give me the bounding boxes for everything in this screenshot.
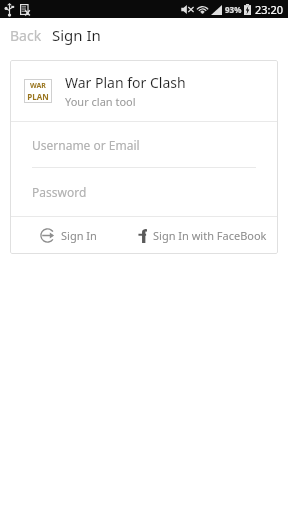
button[interactable]: WAR (10, 60, 278, 121)
button[interactable]: Password (10, 168, 278, 216)
staticText: Sign In (52, 25, 101, 45)
staticText: 93% (225, 4, 242, 15)
button[interactable]: Sign In with FaceBook (127, 217, 278, 254)
other: Sign In with FaceBook (138, 229, 147, 243)
staticText: War Plan for Clash (65, 73, 186, 92)
staticText: Username or Email (32, 137, 140, 153)
staticText: WAR (30, 81, 46, 91)
staticText: PLAN (27, 91, 49, 102)
staticText: Sign In with FaceBook (153, 228, 267, 243)
button[interactable]: Back (0, 19, 50, 52)
staticText: Your clan tool (65, 94, 136, 109)
other: Sign In (40, 228, 55, 243)
staticText: 23:20 (255, 2, 284, 17)
button[interactable]: Sign In (10, 217, 127, 254)
button[interactable]: Username or Email (10, 122, 278, 168)
staticText: Password (32, 184, 87, 200)
staticText: Back (10, 26, 42, 45)
staticText: Sign In (61, 228, 97, 243)
